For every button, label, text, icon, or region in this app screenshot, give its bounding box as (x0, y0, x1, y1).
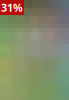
button[interactable]: 31% (0, 0, 24, 15)
staticText: 31% (1, 0, 23, 15)
